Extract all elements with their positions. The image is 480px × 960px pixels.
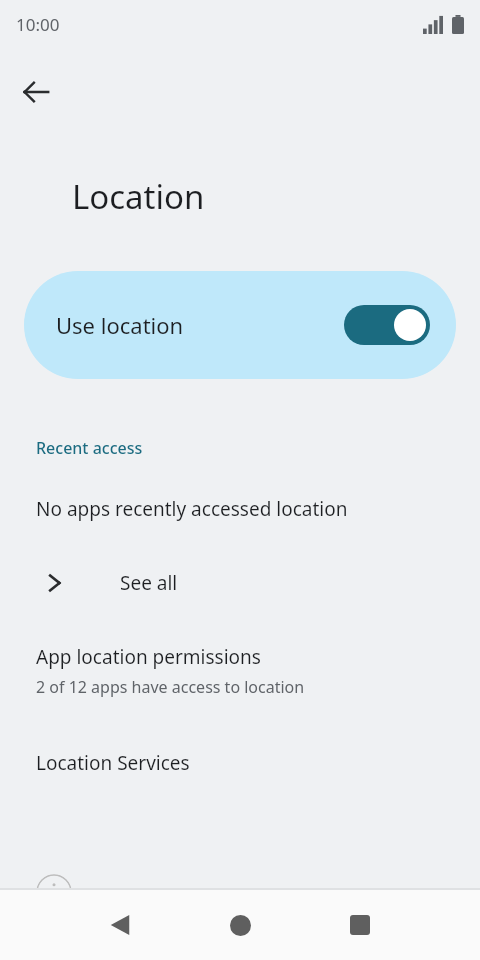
staticText: No apps recently accessed location <box>36 496 348 522</box>
button[interactable]: Home <box>216 901 264 949</box>
button[interactable]: App location permissions <box>0 642 480 702</box>
button[interactable]: Back <box>12 68 60 116</box>
button[interactable]: Location Services <box>0 750 480 776</box>
staticText: App location permissions <box>36 644 261 670</box>
staticText: Location <box>72 174 205 219</box>
staticText: Use location <box>56 310 184 340</box>
staticText: 10:00 <box>16 13 60 36</box>
staticText: Location Services <box>36 750 190 776</box>
button[interactable]: Use location <box>24 271 456 379</box>
button[interactable]: See all <box>0 552 480 614</box>
staticText: See all <box>120 570 178 596</box>
button[interactable]: Back <box>96 901 144 949</box>
staticText: 2 of 12 apps have access to location <box>36 676 305 698</box>
button[interactable]: Recent apps <box>336 901 384 949</box>
staticText: Recent access <box>36 437 143 459</box>
button[interactable]: Info <box>36 874 72 910</box>
